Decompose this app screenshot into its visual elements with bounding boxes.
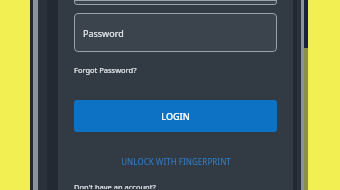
staticText: UNLOCK WITH FINGERPRINT <box>121 156 231 167</box>
button[interactable]: Forgot Password? <box>74 64 137 76</box>
staticText: LOGIN <box>161 110 190 122</box>
button[interactable]: LOGIN <box>74 100 277 132</box>
button[interactable] <box>74 0 277 5</box>
staticText: Forgot Password? <box>74 65 137 75</box>
staticText: Don't have an account? <box>74 182 156 189</box>
staticText: Password <box>83 27 124 39</box>
button[interactable]: Don't have an account? <box>74 181 156 190</box>
button[interactable]: Password <box>74 13 277 52</box>
button[interactable]: UNLOCK WITH FINGERPRINT <box>74 154 277 169</box>
